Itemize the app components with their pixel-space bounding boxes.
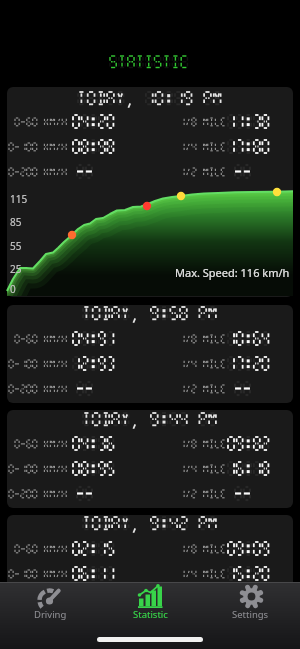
- button[interactable]: [7, 87, 293, 297]
- staticText: 25: [10, 262, 22, 276]
- staticText: Settings: [232, 608, 269, 621]
- button[interactable]: Driving: [0, 582, 100, 649]
- staticText: 55: [10, 239, 22, 253]
- staticText: Max. Speed: 116 km/h: [175, 265, 290, 280]
- button[interactable]: [7, 515, 293, 613]
- button[interactable]: [7, 410, 293, 508]
- staticText: 85: [10, 215, 22, 229]
- staticText: Driving: [34, 608, 67, 621]
- staticText: 115: [10, 192, 28, 206]
- button[interactable]: Statistic: [100, 582, 200, 649]
- button[interactable]: [7, 305, 293, 403]
- staticText: 0: [10, 282, 16, 296]
- button[interactable]: Settings: [200, 582, 300, 649]
- staticText: Statistic: [133, 608, 168, 621]
